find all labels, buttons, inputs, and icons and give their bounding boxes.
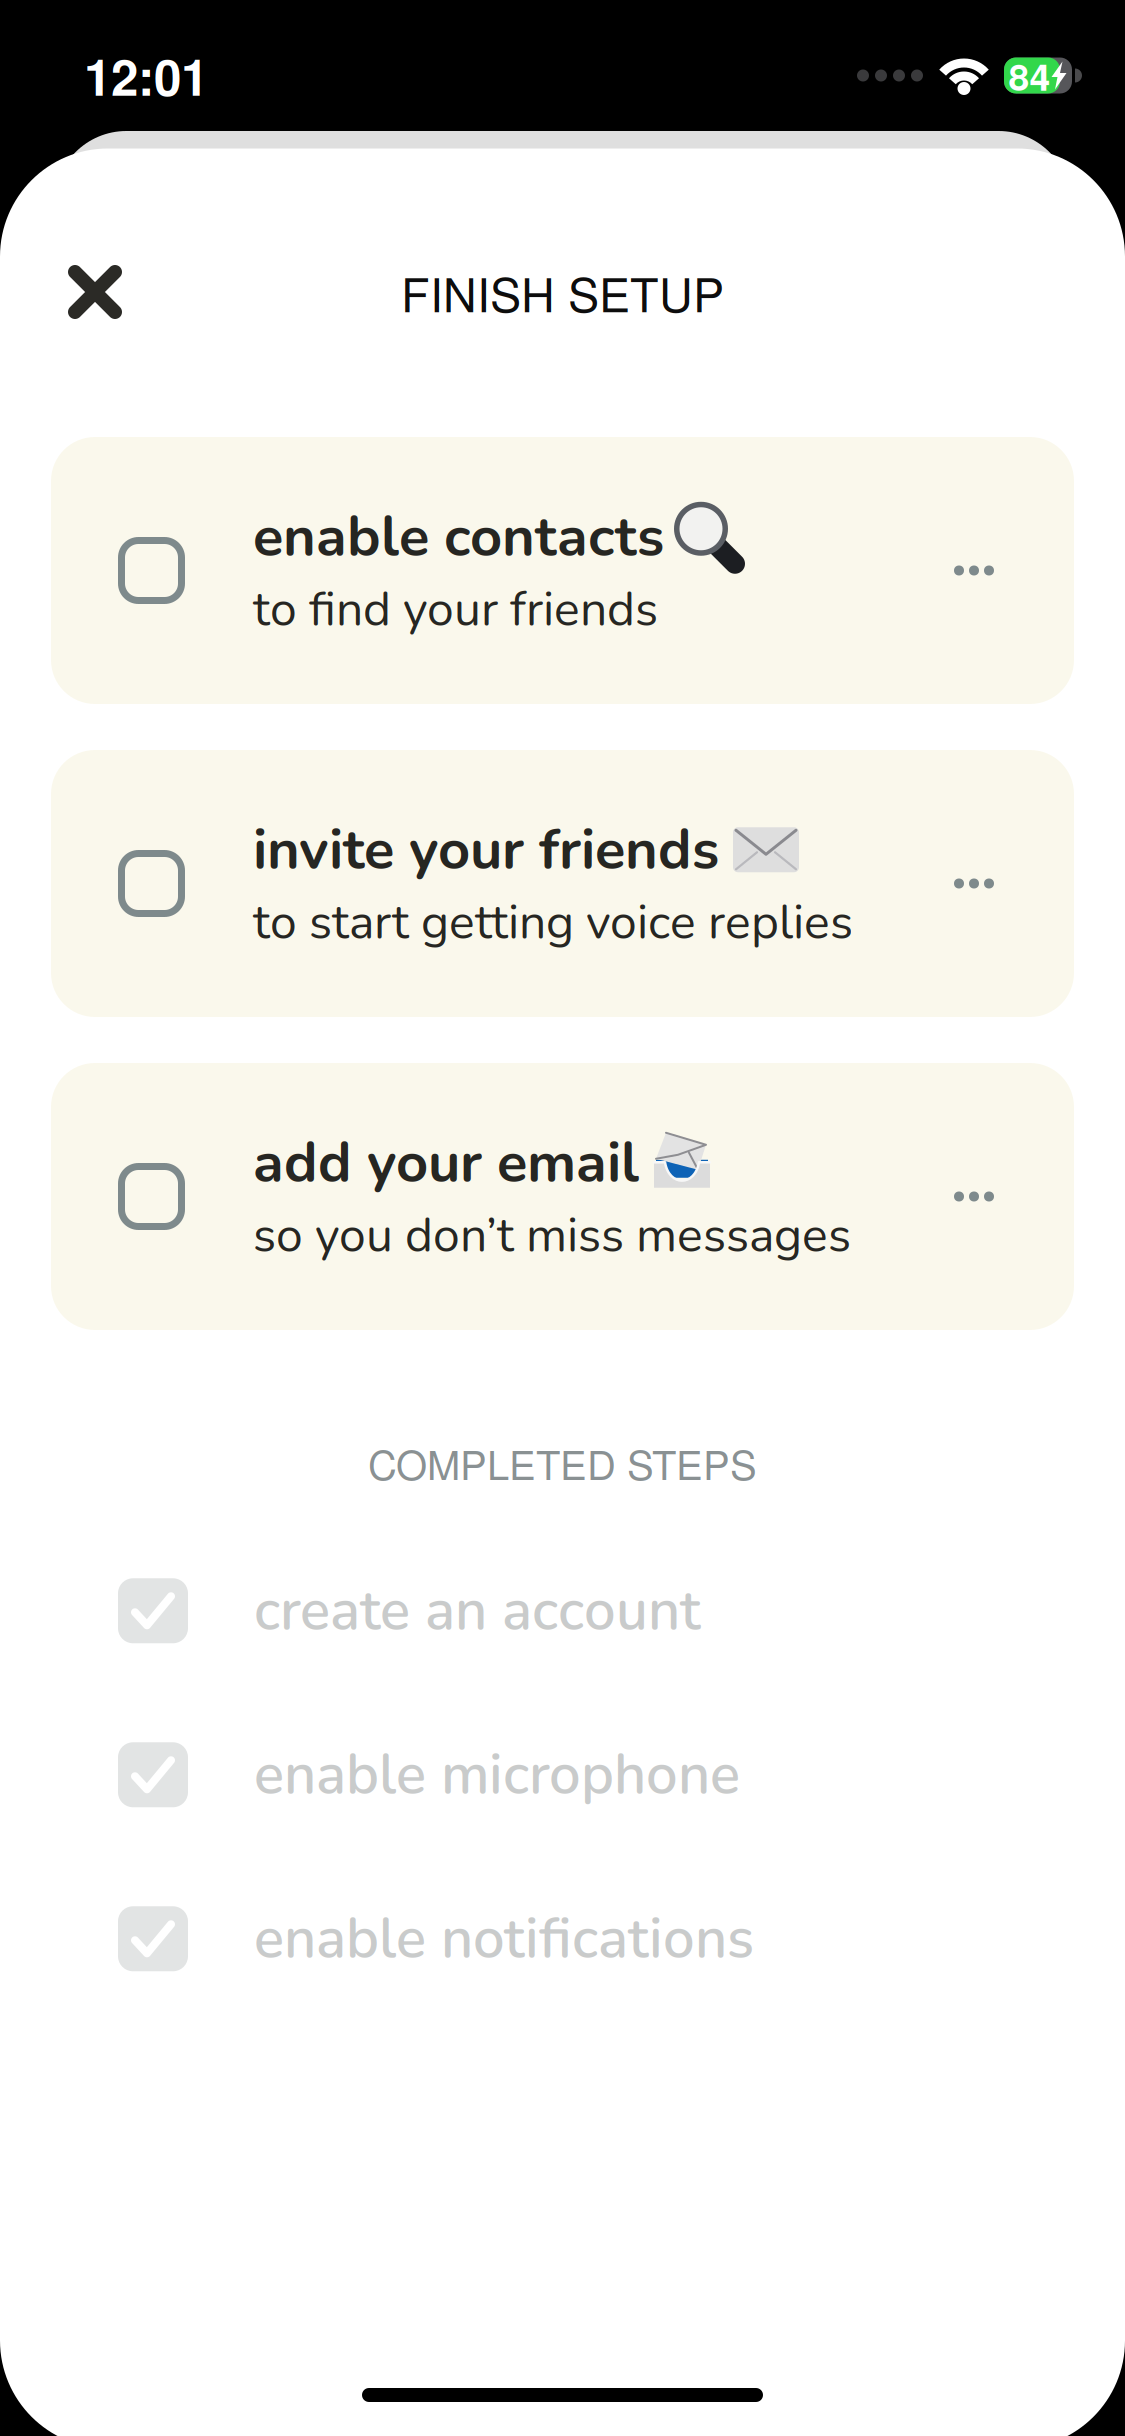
staticText: to start getting voice replies bbox=[253, 890, 853, 955]
button[interactable]: add your email bbox=[51, 1063, 1074, 1330]
staticText: invite your friends bbox=[253, 812, 719, 888]
button[interactable]: enable contacts bbox=[51, 437, 1074, 704]
staticText: 84 bbox=[1008, 49, 1050, 102]
button[interactable]: Close bbox=[35, 232, 155, 352]
staticText: create an account bbox=[254, 1573, 700, 1649]
staticText: 12:01 bbox=[84, 40, 208, 111]
staticText: add your email bbox=[253, 1125, 639, 1201]
staticText: enable microphone bbox=[254, 1737, 740, 1813]
button[interactable]: invite your friends bbox=[51, 750, 1074, 1017]
staticText: to find your friends bbox=[253, 577, 658, 642]
staticText: so you don’t miss messages bbox=[253, 1203, 851, 1268]
staticText: enable notifications bbox=[254, 1901, 754, 1977]
staticText: enable contacts bbox=[253, 499, 664, 575]
staticText: FINISH SETUP bbox=[401, 259, 724, 325]
staticText: COMPLETED STEPS bbox=[368, 1434, 757, 1491]
